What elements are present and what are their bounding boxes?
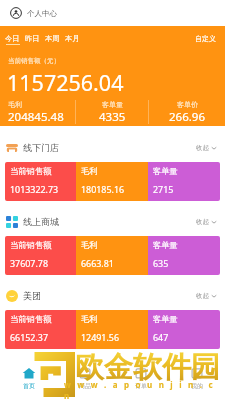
staticText: 647	[153, 331, 169, 343]
staticText: 线下门店	[23, 142, 59, 153]
staticText: 首页	[23, 382, 35, 390]
staticText: 2715	[153, 183, 174, 195]
staticText: 欧金软件园	[75, 349, 220, 386]
button[interactable]: 今日	[3, 34, 22, 45]
staticText: 商品	[79, 382, 91, 390]
staticText: 订单	[135, 382, 147, 390]
button[interactable]: 订单	[113, 355, 169, 400]
staticText: 毛利	[8, 100, 22, 109]
staticText: 本周	[45, 34, 60, 43]
staticText: w w w . a p o u n j i n . c n	[64, 379, 225, 400]
staticText: 当前销售额（元）	[8, 57, 60, 65]
staticText: 1013322.73	[10, 183, 59, 195]
button[interactable]: 收起	[196, 218, 225, 226]
button[interactable]: 自定义	[195, 34, 225, 43]
staticText: 66152.37	[10, 331, 48, 343]
button[interactable]: 商品	[57, 355, 113, 400]
button[interactable]: 昨日	[23, 34, 42, 45]
staticText: 美团	[23, 290, 41, 301]
staticText: 我的	[191, 382, 203, 390]
staticText: 当前销售额	[10, 166, 52, 176]
button[interactable]: 毛利	[76, 236, 148, 275]
staticText: 客单量	[153, 240, 178, 250]
staticText: 毛利	[81, 314, 98, 324]
staticText: 客单量	[102, 100, 123, 109]
staticText: 毛利	[81, 166, 98, 176]
staticText: 收起	[196, 292, 209, 300]
button[interactable]: 当前销售额	[5, 236, 76, 275]
staticText: 毛利	[81, 240, 98, 250]
staticText: 客单价	[177, 100, 198, 109]
staticText: 本月	[65, 34, 80, 43]
staticText: 当前销售额	[10, 314, 52, 324]
button[interactable]: 当前销售额	[5, 310, 76, 349]
staticText: 6663.81	[81, 257, 114, 269]
button[interactable]: 我的	[169, 355, 225, 400]
button[interactable]: 毛利	[76, 310, 148, 349]
staticText: 4335	[99, 109, 126, 124]
staticText: 1157256.04	[7, 68, 124, 97]
button[interactable]: 收起	[196, 292, 225, 300]
button[interactable]: 客单量	[148, 310, 220, 349]
button[interactable]: 本月	[63, 34, 82, 45]
button[interactable]: 个人中心	[0, 7, 57, 19]
staticText: 客单量	[153, 166, 178, 176]
staticText: 180185.16	[81, 183, 125, 195]
staticText: 个人中心	[27, 9, 57, 18]
staticText: 今日	[5, 34, 20, 43]
button[interactable]: 本周	[43, 34, 62, 45]
staticText: 昨日	[25, 34, 40, 43]
button[interactable]: 客单量	[148, 236, 220, 275]
staticText: 12491.56	[81, 331, 119, 343]
staticText: 37607.78	[10, 257, 48, 269]
staticText: 线上商城	[23, 216, 59, 227]
staticText: 当前销售额	[10, 240, 52, 250]
staticText: 635	[153, 257, 169, 269]
button[interactable]: 客单量	[148, 162, 220, 201]
staticText: 收起	[196, 144, 209, 152]
staticText: 204845.48	[8, 109, 64, 124]
button[interactable]: 首页	[0, 355, 57, 400]
button[interactable]: 当前销售额	[5, 162, 76, 201]
staticText: 266.96	[169, 109, 205, 124]
button[interactable]: 毛利	[76, 162, 148, 201]
button[interactable]: 收起	[196, 144, 225, 152]
staticText: 客单量	[153, 314, 178, 324]
staticText: 收起	[196, 218, 209, 226]
